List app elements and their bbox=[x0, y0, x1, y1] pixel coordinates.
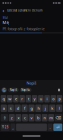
staticText: Př. fotografii z fotogalerie bbox=[2, 26, 44, 31]
staticText: Měj bbox=[2, 20, 9, 25]
button[interactable]: n bbox=[42, 114, 48, 121]
button[interactable]: Backspace bbox=[55, 114, 62, 121]
button[interactable]: a bbox=[1, 105, 7, 112]
button[interactable]: Enter bbox=[53, 124, 62, 131]
staticText: e bbox=[15, 96, 17, 101]
button[interactable]: g bbox=[28, 105, 35, 112]
staticText: ⏎ bbox=[56, 125, 59, 129]
staticText: j bbox=[45, 106, 46, 111]
staticText: Napišu bbox=[21, 88, 30, 92]
staticText: . bbox=[50, 125, 51, 130]
button[interactable]: v bbox=[29, 114, 34, 121]
staticText: b bbox=[37, 115, 39, 120]
button[interactable]: f bbox=[21, 105, 28, 112]
staticText: c bbox=[24, 115, 26, 120]
button[interactable]: o bbox=[50, 95, 56, 102]
button[interactable]: c bbox=[22, 114, 28, 121]
staticText: d bbox=[17, 106, 19, 111]
staticText: u bbox=[40, 96, 42, 101]
button[interactable]: l bbox=[56, 105, 62, 112]
staticText: x bbox=[17, 115, 19, 120]
staticText: Titul bbox=[2, 16, 8, 19]
staticText: ⌫ bbox=[56, 115, 62, 120]
staticText: y bbox=[34, 96, 36, 101]
button[interactable]: Napiš bbox=[8, 88, 19, 92]
staticText: w bbox=[8, 96, 11, 101]
button[interactable]: s bbox=[8, 105, 14, 112]
staticText: G bbox=[3, 87, 6, 93]
button[interactable]: ?123 bbox=[1, 124, 10, 131]
button[interactable]: . bbox=[48, 124, 53, 131]
staticText: f bbox=[24, 106, 25, 111]
button[interactable]: Back bbox=[1, 6, 5, 15]
button[interactable]: h bbox=[35, 105, 41, 112]
button[interactable]: w bbox=[7, 95, 12, 102]
button[interactable]: z bbox=[9, 114, 15, 121]
staticText: v bbox=[30, 115, 32, 120]
staticText: , bbox=[12, 125, 13, 130]
staticText: Odeslat oznámení členům bbox=[7, 9, 42, 12]
staticText: h bbox=[37, 106, 39, 111]
button[interactable]: j bbox=[42, 105, 48, 112]
button[interactable]: t bbox=[26, 95, 31, 102]
button[interactable]: Napiš bbox=[26, 80, 36, 86]
button[interactable]: Keyboard options bbox=[1, 87, 7, 93]
button[interactable]: , bbox=[10, 124, 15, 131]
button[interactable]: Napišu bbox=[20, 88, 31, 92]
staticText: q bbox=[2, 96, 4, 101]
staticText: z bbox=[11, 115, 13, 120]
staticText: i bbox=[47, 96, 48, 101]
button[interactable]: i bbox=[44, 95, 50, 102]
staticText: l bbox=[59, 106, 60, 111]
staticText: ‹ bbox=[2, 7, 4, 14]
staticText: ?123 bbox=[2, 125, 9, 129]
staticText: r bbox=[21, 96, 23, 101]
staticText: Napiš bbox=[10, 88, 17, 92]
staticText: p bbox=[58, 96, 60, 101]
staticText: o bbox=[52, 96, 54, 101]
staticText: k bbox=[51, 106, 53, 111]
button[interactable]: b bbox=[35, 114, 41, 121]
staticText: t bbox=[28, 96, 29, 101]
button[interactable]: p bbox=[57, 95, 62, 102]
button[interactable]: e bbox=[13, 95, 19, 102]
button[interactable]: u bbox=[38, 95, 44, 102]
button[interactable]: r bbox=[19, 95, 25, 102]
staticText: s bbox=[10, 106, 12, 111]
button[interactable]: m bbox=[48, 114, 54, 121]
staticText: g bbox=[30, 106, 32, 111]
staticText: a bbox=[3, 106, 5, 111]
staticText: ⇧ bbox=[3, 115, 6, 120]
staticText: Napiš bbox=[26, 80, 36, 86]
button[interactable]: x bbox=[15, 114, 21, 121]
button[interactable]: y bbox=[32, 95, 37, 102]
button[interactable]: k bbox=[49, 105, 55, 112]
button[interactable]: Shift bbox=[1, 114, 8, 121]
button[interactable]: d bbox=[14, 105, 21, 112]
staticText: m bbox=[49, 115, 53, 120]
staticText: n bbox=[44, 115, 46, 120]
button[interactable]: Voice input bbox=[56, 87, 61, 93]
button[interactable]: q bbox=[1, 95, 6, 102]
